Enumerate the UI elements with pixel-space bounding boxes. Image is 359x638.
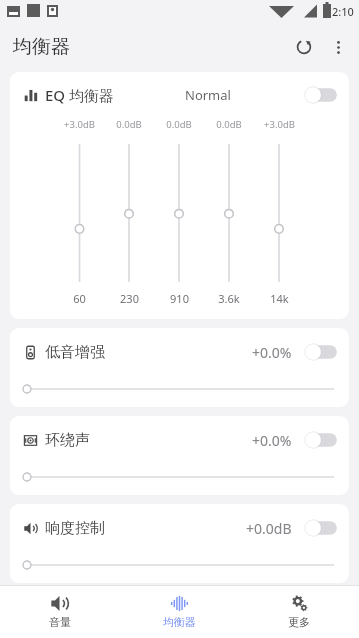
staticText: 均衡器 <box>13 35 70 59</box>
staticText: +3.0dB <box>64 118 95 131</box>
button[interactable]: 环绕声 level <box>23 470 336 484</box>
staticText: 910 <box>170 291 189 306</box>
button[interactable]: Band level <box>154 142 204 284</box>
staticText: +0.0% <box>252 431 292 450</box>
staticText: 3.6k <box>218 291 240 306</box>
button[interactable]: More options <box>322 31 354 63</box>
staticText: +0.0dB <box>246 519 292 538</box>
button[interactable]: Enable toggle <box>304 343 337 361</box>
button[interactable]: 响度控制 level <box>23 558 336 572</box>
staticText: 音量 <box>49 615 71 629</box>
button[interactable]: EQ 均衡器 <box>10 72 349 319</box>
staticText: 低音增强 <box>45 343 105 362</box>
button[interactable]: Enable toggle <box>304 86 337 104</box>
button[interactable]: 响度控制 <box>10 504 349 583</box>
button[interactable]: Band level <box>104 142 154 284</box>
button[interactable]: Refresh <box>286 29 322 65</box>
staticText: 2:10 <box>332 4 354 19</box>
button[interactable]: Band level <box>254 142 304 284</box>
staticText: +0.0% <box>252 343 292 362</box>
staticText: 0.0dB <box>166 118 192 131</box>
staticText: EQ 均衡器 <box>45 85 115 105</box>
staticText: 14k <box>270 291 289 306</box>
button[interactable]: Band level <box>55 142 104 284</box>
button[interactable]: 均衡器 <box>119 586 239 638</box>
staticText: 均衡器 <box>163 615 196 629</box>
button[interactable]: 音量 <box>0 586 119 638</box>
staticText: 更多 <box>288 615 310 629</box>
button[interactable]: 环绕声 <box>10 416 349 495</box>
staticText: +3.0dB <box>264 118 295 131</box>
staticText: 响度控制 <box>45 519 105 538</box>
staticText: 230 <box>120 291 139 306</box>
staticText: 环绕声 <box>45 431 90 450</box>
staticText: 0.0dB <box>116 118 142 131</box>
button[interactable]: Enable toggle <box>304 431 337 449</box>
staticText: 0.0dB <box>216 118 242 131</box>
button[interactable]: 低音增强 level <box>23 382 336 396</box>
staticText: Normal <box>185 86 231 104</box>
staticText: 60 <box>73 291 86 306</box>
button[interactable]: Band level <box>204 142 254 284</box>
button[interactable]: 低音增强 <box>10 328 349 407</box>
button[interactable]: 更多 <box>239 586 359 638</box>
button[interactable]: Enable toggle <box>304 519 337 537</box>
